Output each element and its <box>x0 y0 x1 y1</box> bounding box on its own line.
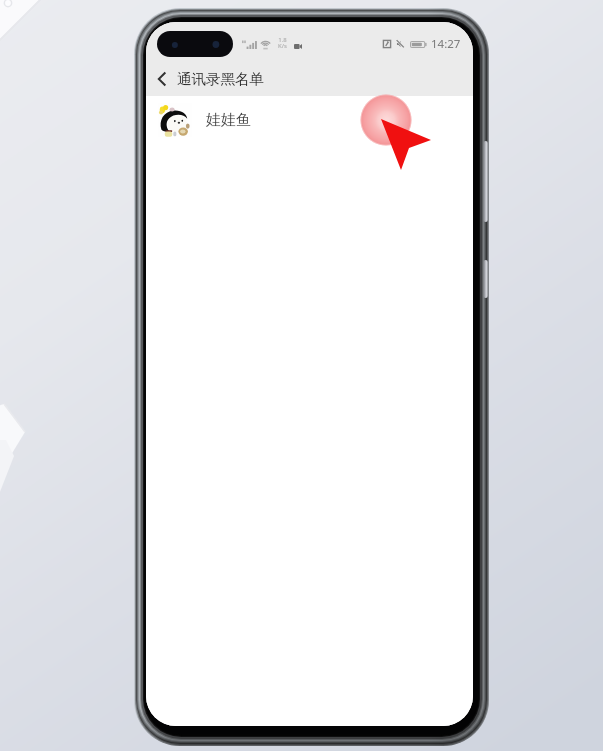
staticText: 通讯录黑名单 <box>177 70 264 88</box>
button[interactable]: 娃娃鱼 <box>146 96 473 144</box>
staticText: 娃娃鱼 <box>206 111 251 130</box>
button[interactable]: Back <box>148 65 176 93</box>
staticText: 1.8 K/s <box>278 36 287 50</box>
staticText: 14:27 <box>431 36 461 52</box>
